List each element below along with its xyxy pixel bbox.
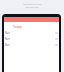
other: Toggle (55, 44, 58, 46)
staticText: Run (5, 31, 10, 35)
button[interactable]: Run (4, 42, 59, 48)
other: Toggle (55, 38, 58, 40)
staticText: with app bar (25, 6, 39, 9)
button[interactable]: Run (4, 30, 59, 36)
staticText: Run (5, 43, 10, 47)
staticText: Today (13, 25, 22, 29)
staticText: Run (5, 37, 10, 41)
button[interactable]: Run (4, 36, 59, 42)
staticText: reminders screen (23, 3, 42, 6)
other: Toggle (55, 32, 58, 34)
